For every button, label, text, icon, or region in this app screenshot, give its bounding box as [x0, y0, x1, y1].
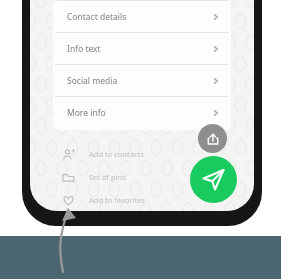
button[interactable]: Set of pins: [61, 165, 254, 188]
button[interactable]: Add to contacts: [61, 142, 254, 165]
button[interactable]: More info: [53, 97, 231, 128]
staticText: More info: [67, 107, 212, 119]
button[interactable]: Social media: [53, 65, 231, 96]
staticText: Info text: [67, 43, 212, 55]
button[interactable]: Share: [198, 124, 227, 153]
staticText: Contact details: [67, 11, 212, 23]
staticText: Social media: [67, 75, 212, 87]
button[interactable]: Add to favorites: [61, 188, 254, 211]
staticText: Add to favorites: [89, 195, 145, 205]
button[interactable]: Contact details: [53, 1, 231, 32]
button[interactable]: Navigate: [190, 156, 237, 203]
staticText: Set of pins: [89, 172, 126, 182]
button[interactable]: Info text: [53, 33, 231, 64]
staticText: Add to contacts: [89, 149, 144, 159]
